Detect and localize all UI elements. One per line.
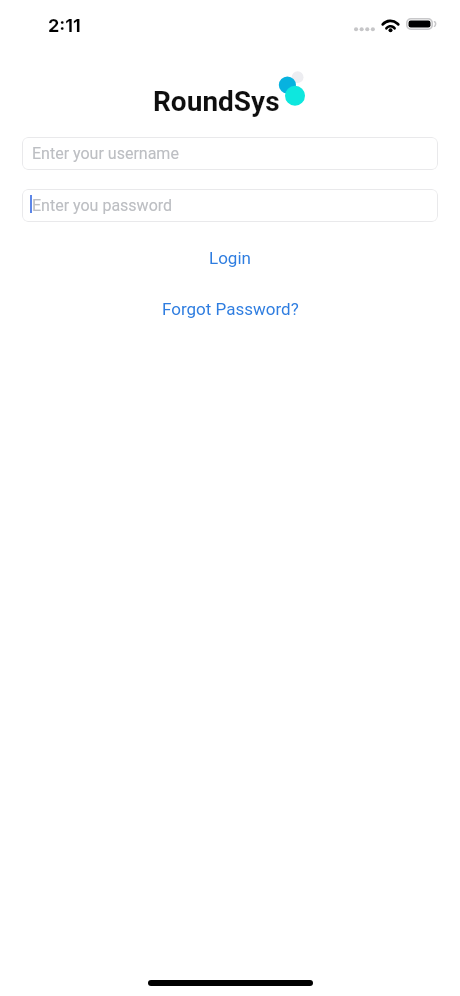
staticText: Enter your username	[32, 144, 179, 163]
button[interactable]: Enter you password	[22, 189, 438, 222]
staticText: 2:11	[48, 15, 81, 37]
other: Cellular signal	[354, 27, 376, 33]
button[interactable]: Forgot Password?	[0, 294, 460, 324]
other: Battery	[406, 18, 437, 31]
staticText: Forgot Password?	[162, 299, 299, 319]
staticText: Enter you password	[32, 196, 173, 215]
button[interactable]: Enter your username	[22, 137, 438, 170]
staticText: RoundSys	[153, 85, 280, 118]
button[interactable]: Login	[0, 243, 460, 273]
staticText: Login	[209, 248, 251, 268]
other: Wi-Fi	[381, 18, 401, 32]
